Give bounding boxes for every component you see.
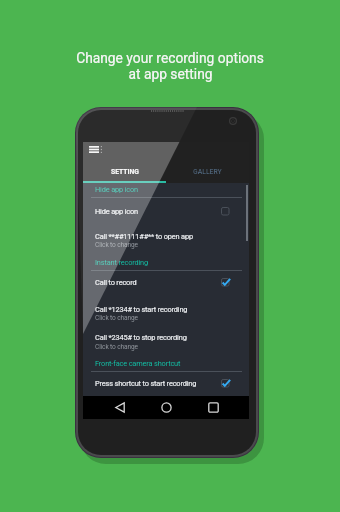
button[interactable]: Call *2345# to stop recording <box>83 329 249 353</box>
staticText: SETTING <box>111 168 139 176</box>
button[interactable]: Back <box>96 396 144 419</box>
staticText: Call *1234# to start recording <box>95 305 188 314</box>
staticText: Call *2345# to stop recording <box>95 333 187 342</box>
button[interactable]: Press shortcut to start recording <box>83 376 249 392</box>
other: Open navigation menu <box>89 146 99 153</box>
staticText: at app setting <box>128 66 213 82</box>
staticText: Hide app icon <box>95 207 139 216</box>
staticText: GALLERY <box>193 168 222 176</box>
staticText: Click to change <box>95 241 138 249</box>
staticText: Call **##1111##** to open app <box>95 232 193 241</box>
button[interactable]: Home <box>143 396 189 419</box>
staticText: Click to change <box>95 343 138 351</box>
staticText: Call to record <box>95 278 137 287</box>
button[interactable]: SETTING <box>83 142 166 183</box>
button[interactable]: GALLERY <box>166 142 249 183</box>
staticText: Change your recording options <box>76 50 264 66</box>
staticText: Press shortcut to start recording <box>95 379 197 388</box>
button[interactable]: Call **##1111##** to open app <box>83 228 249 252</box>
staticText: Click to change <box>95 314 138 322</box>
button[interactable]: Call to record <box>83 275 249 290</box>
button[interactable]: Recent apps <box>190 396 236 419</box>
staticText: Front-face camera shortcut <box>95 359 181 368</box>
button[interactable]: Call *1234# to start recording <box>83 301 249 325</box>
staticText: Hide app icon <box>95 185 139 194</box>
staticText: Instant recording <box>95 258 149 267</box>
button[interactable]: Hide app icon <box>83 204 249 218</box>
